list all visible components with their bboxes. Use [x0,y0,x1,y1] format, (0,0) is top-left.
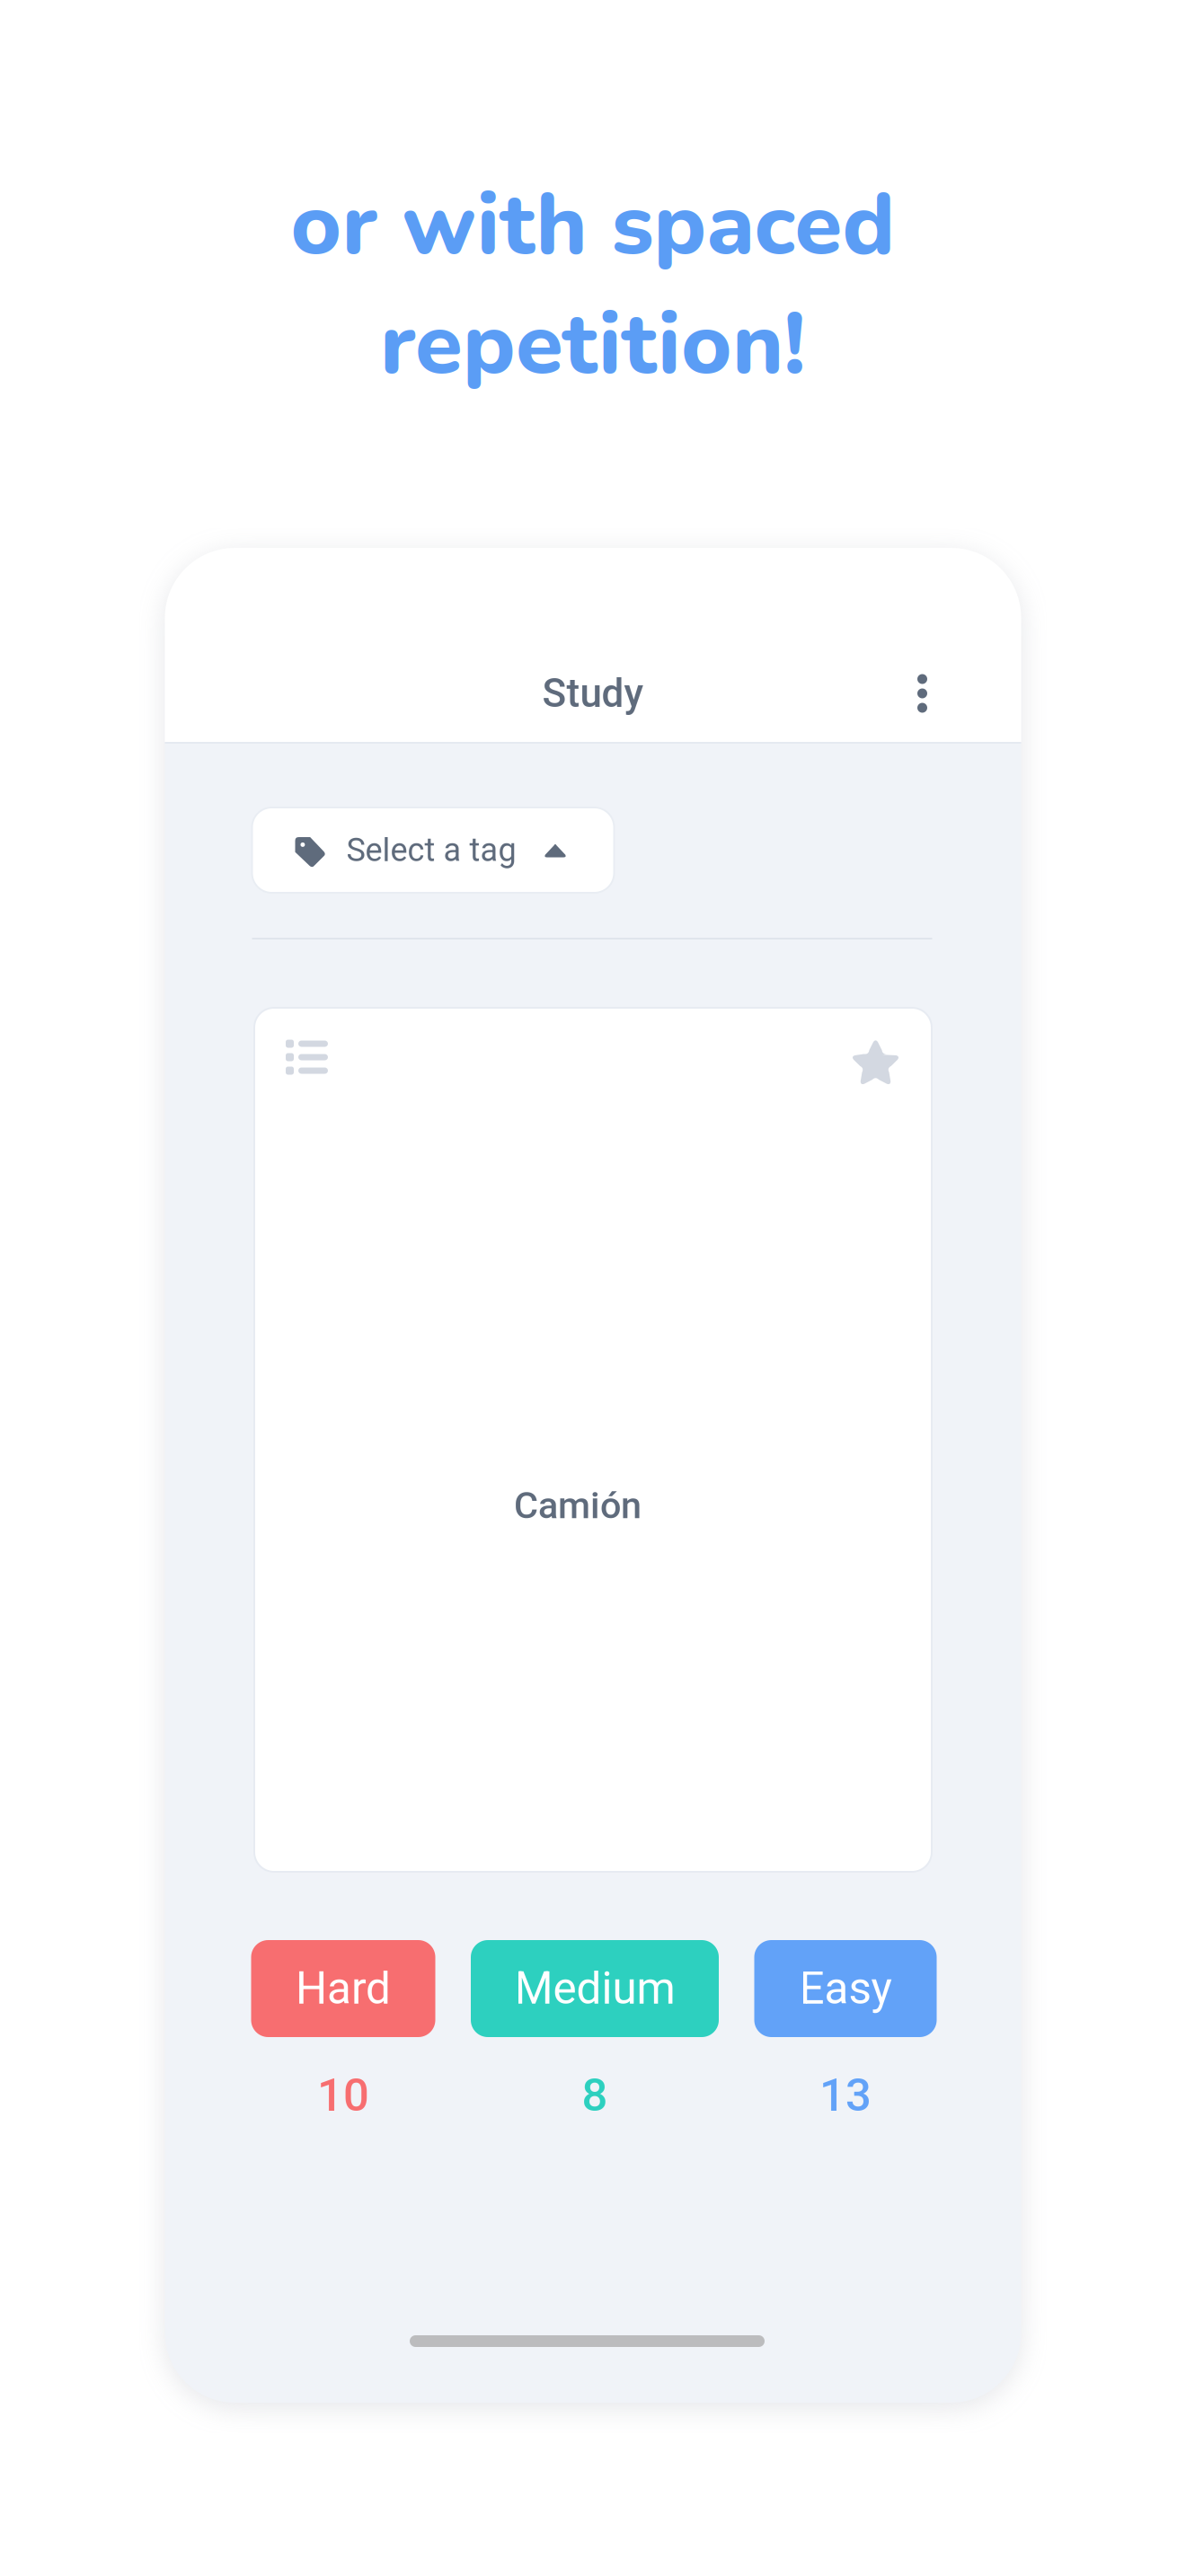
staticText: Medium [514,1963,675,2015]
button[interactable]: Card list [286,1037,328,1073]
button[interactable]: More options [881,645,964,742]
staticText: Select a tag [346,831,516,869]
staticText: Easy [799,1963,892,2015]
button[interactable]: Hard [251,1940,435,2122]
staticText: or with spaced [291,166,895,284]
staticText: Study [542,670,644,717]
staticText: Camión [514,1484,642,1527]
staticText: 13 [819,2069,872,2122]
staticText: 10 [317,2069,369,2122]
button[interactable]: Easy [754,1940,937,2122]
staticText: Hard [296,1963,391,2015]
staticText: 8 [582,2069,608,2122]
button[interactable]: Camión [254,1008,932,1872]
button[interactable]: Favourite [850,1037,901,1088]
staticText: repetition! [380,286,806,403]
button[interactable]: Medium [471,1940,719,2122]
button[interactable]: Select a tag [252,807,614,893]
